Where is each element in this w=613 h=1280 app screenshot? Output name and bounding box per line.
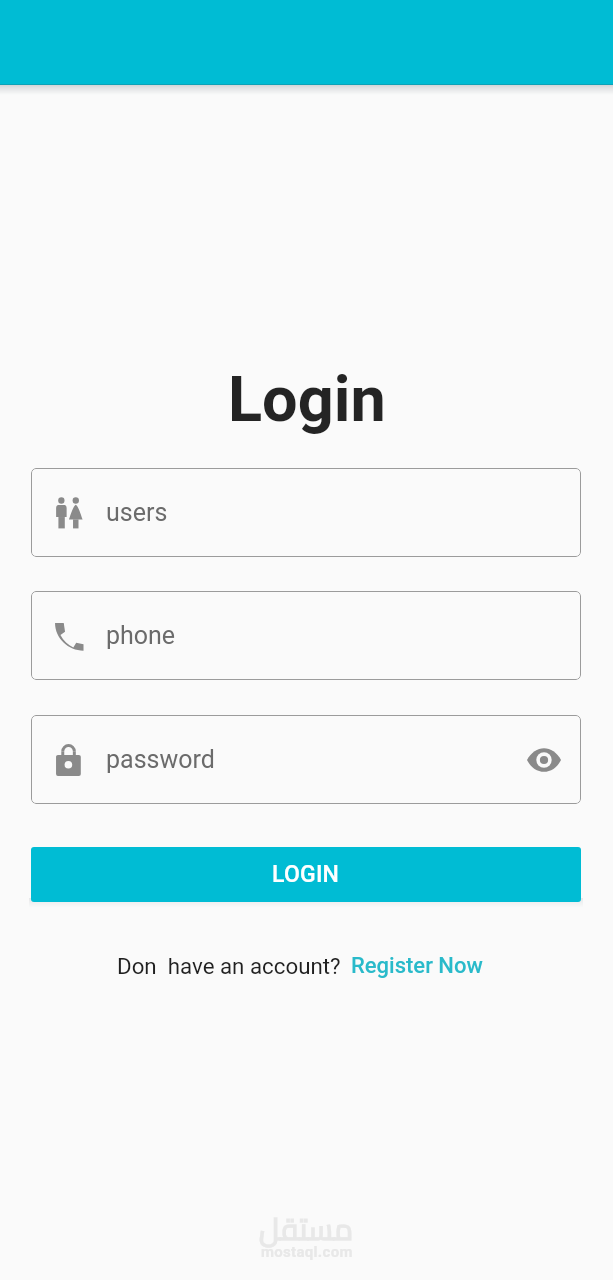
button[interactable]: users (31, 468, 581, 557)
staticText: password (106, 745, 215, 774)
staticText: mostaql.com (261, 1243, 353, 1261)
staticText: مستقل (259, 1201, 354, 1257)
staticText: LOGIN (272, 861, 340, 888)
button[interactable]: LOGIN (31, 847, 581, 902)
staticText: Don have an account? (117, 953, 341, 979)
button[interactable]: phone (31, 591, 581, 680)
button[interactable]: Show password (522, 738, 566, 782)
staticText: Login (228, 363, 386, 437)
button[interactable]: Register Now (351, 953, 483, 979)
staticText: users (106, 498, 168, 527)
staticText: Register Now (351, 953, 483, 979)
staticText: phone (106, 621, 176, 650)
button[interactable]: password (31, 715, 581, 804)
